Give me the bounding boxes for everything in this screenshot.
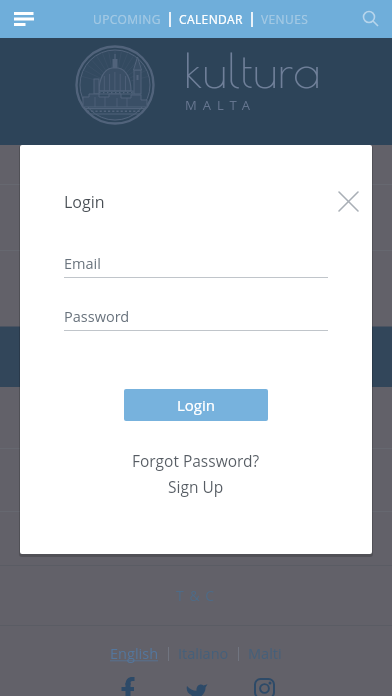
button[interactable]: Italiano xyxy=(169,644,238,664)
button[interactable] xyxy=(252,677,278,696)
button[interactable] xyxy=(114,676,142,696)
button[interactable]: Sign Up xyxy=(168,476,224,497)
staticText: MALTA xyxy=(185,96,256,114)
button[interactable]: Login xyxy=(124,389,268,421)
staticText: Login xyxy=(177,395,216,415)
staticText: CALENDAR xyxy=(179,11,243,27)
staticText: VENUES xyxy=(261,11,309,27)
staticText: English xyxy=(110,644,159,664)
staticText: Forgot Password? xyxy=(132,450,260,471)
button[interactable]: CALENDAR xyxy=(171,0,251,38)
button[interactable]: UPCOMING xyxy=(85,0,169,38)
button[interactable] xyxy=(182,678,210,696)
staticText: Password xyxy=(64,307,130,327)
staticText: T & C xyxy=(176,586,216,605)
staticText: Sign Up xyxy=(168,476,224,497)
staticText: kultura xyxy=(184,42,321,98)
staticText: UPCOMING xyxy=(93,11,161,27)
button[interactable]: Malti xyxy=(239,644,291,664)
button[interactable]: VENUES xyxy=(253,0,317,38)
button[interactable] xyxy=(352,0,390,38)
staticText: Email xyxy=(64,254,101,274)
button[interactable] xyxy=(328,181,368,221)
staticText: Login xyxy=(64,191,105,213)
staticText: Malti xyxy=(248,644,282,664)
button[interactable]: Password xyxy=(64,297,328,333)
button[interactable] xyxy=(3,2,47,36)
button[interactable]: Forgot Password? xyxy=(132,450,260,471)
staticText: Italiano xyxy=(178,644,229,664)
button[interactable]: Email xyxy=(64,244,328,280)
button[interactable]: English xyxy=(101,644,168,664)
